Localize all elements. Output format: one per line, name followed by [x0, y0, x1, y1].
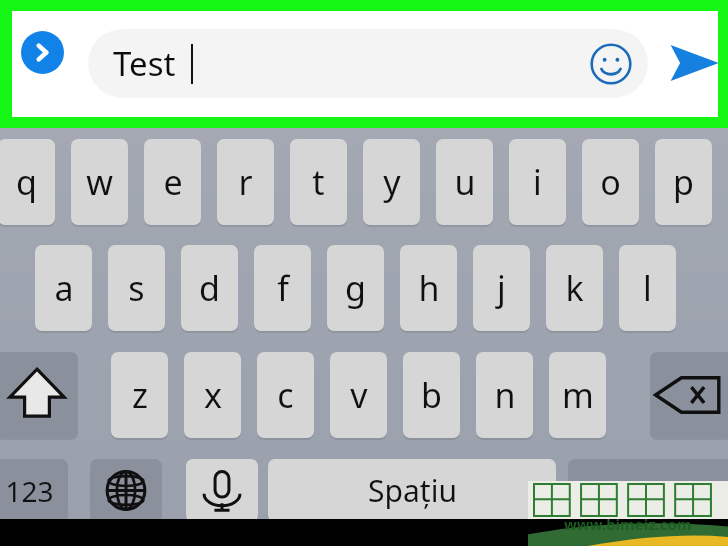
staticText: h: [418, 265, 440, 311]
button[interactable]: k: [546, 245, 603, 331]
button[interactable]: c: [257, 352, 314, 438]
button[interactable]: Send: [665, 35, 721, 91]
staticText: j: [497, 265, 506, 311]
staticText: k: [565, 265, 584, 311]
staticText: r: [238, 159, 253, 205]
staticText: w: [86, 159, 113, 205]
staticText: v: [350, 372, 368, 418]
staticText: q: [16, 159, 37, 205]
staticText: u: [454, 159, 476, 205]
staticText: f: [277, 265, 289, 311]
button[interactable]: m: [549, 352, 606, 438]
staticText: z: [132, 372, 148, 418]
staticText: i: [533, 159, 542, 205]
staticText: l: [643, 265, 652, 311]
button[interactable]: s: [108, 245, 165, 331]
button[interactable]: a: [35, 245, 92, 331]
button[interactable]: Numbers: [0, 459, 68, 522]
staticText: y: [383, 159, 401, 205]
button[interactable]: r: [217, 139, 274, 225]
button[interactable]: u: [436, 139, 493, 225]
staticText: www.bimeiz.com: [564, 514, 692, 534]
button[interactable]: w: [71, 139, 128, 225]
button[interactable]: x: [184, 352, 241, 438]
button[interactable]: Emoji: [590, 43, 632, 85]
staticText: Test: [113, 41, 176, 86]
button[interactable]: Backspace: [650, 352, 728, 438]
button[interactable]: n: [476, 352, 533, 438]
staticText: p: [673, 159, 694, 205]
staticText: c: [277, 372, 294, 418]
button[interactable]: q: [0, 139, 55, 225]
button[interactable]: Spațiu: [268, 459, 556, 522]
button[interactable]: Shift: [0, 352, 78, 438]
button[interactable]: z: [111, 352, 168, 438]
button[interactable]: e: [144, 139, 201, 225]
staticText: a: [54, 265, 74, 311]
button[interactable]: j: [473, 245, 530, 331]
button[interactable]: Dictate: [186, 459, 258, 522]
button[interactable]: Test: [88, 29, 648, 98]
button[interactable]: v: [330, 352, 387, 438]
staticText: b: [421, 372, 442, 418]
staticText: Spațiu: [368, 470, 457, 511]
button[interactable]: p: [655, 139, 712, 225]
staticText: n: [494, 372, 516, 418]
staticText: e: [163, 159, 183, 205]
button[interactable]: Expand: [21, 31, 64, 74]
staticText: d: [199, 265, 220, 311]
button[interactable]: g: [327, 245, 384, 331]
button[interactable]: y: [363, 139, 420, 225]
staticText: g: [345, 265, 366, 311]
staticText: t: [312, 159, 325, 205]
button[interactable]: Switch language: [90, 459, 162, 522]
staticText: 123: [5, 472, 54, 510]
button[interactable]: Return: [568, 459, 728, 522]
staticText: m: [562, 372, 594, 418]
staticText: x: [204, 372, 222, 418]
button[interactable]: b: [403, 352, 460, 438]
staticText: s: [128, 265, 145, 311]
button[interactable]: o: [582, 139, 639, 225]
button[interactable]: i: [509, 139, 566, 225]
staticText: o: [600, 159, 621, 205]
button[interactable]: f: [254, 245, 311, 331]
button[interactable]: l: [619, 245, 676, 331]
button[interactable]: h: [400, 245, 457, 331]
button[interactable]: t: [290, 139, 347, 225]
button[interactable]: d: [181, 245, 238, 331]
